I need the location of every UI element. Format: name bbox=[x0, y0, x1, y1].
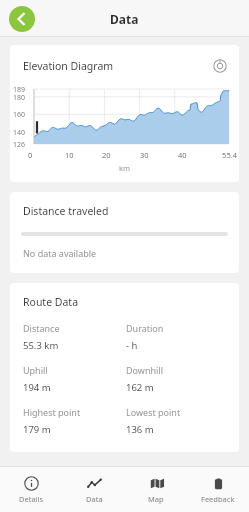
staticText: 40 bbox=[178, 150, 216, 160]
staticText: 126 bbox=[13, 140, 26, 150]
staticText: Downhill bbox=[126, 364, 163, 376]
staticText: 55.3 km bbox=[23, 339, 59, 352]
button[interactable]: Feedback bbox=[187, 467, 249, 512]
staticText: No data available bbox=[23, 247, 97, 259]
staticText: Details bbox=[19, 494, 44, 504]
button[interactable]: Reset diagram bbox=[211, 57, 229, 75]
staticText: 10 bbox=[65, 150, 102, 160]
staticText: Map bbox=[148, 494, 164, 504]
staticText: 140 bbox=[13, 128, 26, 138]
staticText: Highest point bbox=[23, 406, 81, 418]
button[interactable]: Data bbox=[63, 467, 125, 512]
button[interactable]: Details bbox=[0, 467, 63, 512]
staticText: Distance traveled bbox=[23, 204, 109, 218]
staticText: Data bbox=[110, 11, 139, 27]
staticText: 194 m bbox=[23, 381, 51, 394]
button[interactable]: Map bbox=[125, 467, 187, 512]
staticText: 0 bbox=[28, 150, 65, 160]
staticText: Elevation Diagram bbox=[23, 59, 114, 73]
staticText: 20 bbox=[102, 150, 140, 160]
button[interactable]: Back bbox=[9, 6, 35, 32]
staticText: km bbox=[10, 163, 239, 173]
staticText: 136 m bbox=[126, 423, 154, 436]
staticText: 30 bbox=[140, 150, 178, 160]
staticText: Feedback bbox=[201, 494, 235, 504]
staticText: 162 m bbox=[126, 381, 154, 394]
staticText: Data bbox=[86, 494, 103, 504]
staticText: 189 bbox=[13, 85, 26, 95]
staticText: Duration bbox=[126, 322, 164, 334]
staticText: Uphill bbox=[23, 364, 48, 376]
staticText: 179 m bbox=[23, 423, 51, 436]
staticText: Route Data bbox=[23, 295, 79, 309]
staticText: Lowest point bbox=[126, 406, 181, 418]
staticText: 160 bbox=[13, 110, 26, 120]
staticText: 55.4 bbox=[216, 150, 237, 160]
staticText: Distance bbox=[23, 322, 60, 334]
staticText: 180 bbox=[13, 93, 26, 103]
staticText: - h bbox=[126, 339, 138, 352]
